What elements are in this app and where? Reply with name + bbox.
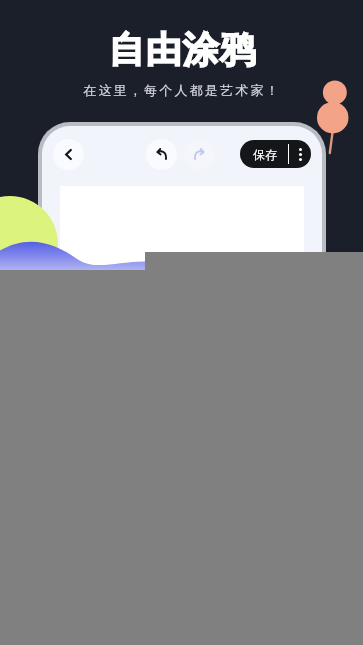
button[interactable]: Redo (184, 139, 215, 170)
staticText: 在这里，每个人都是艺术家！ (83, 82, 281, 98)
button[interactable]: More options (289, 140, 311, 168)
staticText: 保存 (253, 147, 277, 162)
button[interactable]: Back (53, 139, 84, 170)
button[interactable]: Undo (146, 139, 177, 170)
button[interactable]: 保存 (240, 140, 288, 168)
staticText: 自由涂鸦 (108, 27, 256, 72)
